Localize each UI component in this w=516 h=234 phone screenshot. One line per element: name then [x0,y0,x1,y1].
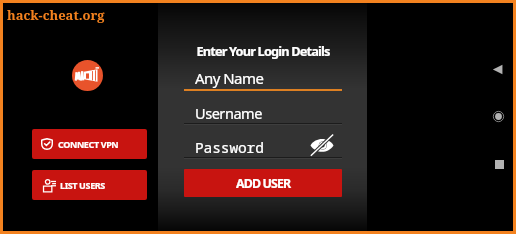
button[interactable]: Back [486,58,508,80]
staticText: hack-cheat.org [7,6,105,24]
button[interactable]: Magic TV logo [72,60,103,91]
staticText: LIST USERS [60,179,105,191]
button[interactable]: Recent apps [488,153,510,175]
staticText: Password [195,137,264,157]
button[interactable]: Home [487,105,509,127]
staticText: ADD USER [236,175,291,192]
staticText: CONNECT VPN [58,138,119,150]
button[interactable]: CONNECT VPN [32,129,147,159]
button[interactable]: ADD USER [184,169,342,197]
staticText: Username [195,103,262,123]
staticText: Any Name [195,68,264,88]
button[interactable]: LIST USERS [32,170,147,200]
button[interactable]: Show password [309,132,334,157]
staticText: Enter Your Login Details [184,42,342,59]
